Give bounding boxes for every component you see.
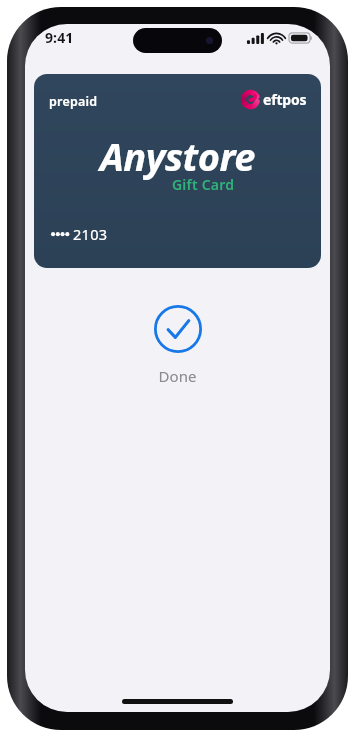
button[interactable]: Done (25, 305, 330, 386)
staticText: 9:41 (45, 28, 74, 47)
staticText: prepaid (49, 93, 98, 110)
staticText: 2103 (73, 224, 108, 244)
button[interactable]: prepaid (34, 74, 321, 268)
staticText: eftpos (263, 90, 307, 109)
staticText: Done (158, 366, 197, 386)
staticText: Anystore (100, 130, 255, 182)
staticText: Gift Card (172, 175, 235, 194)
